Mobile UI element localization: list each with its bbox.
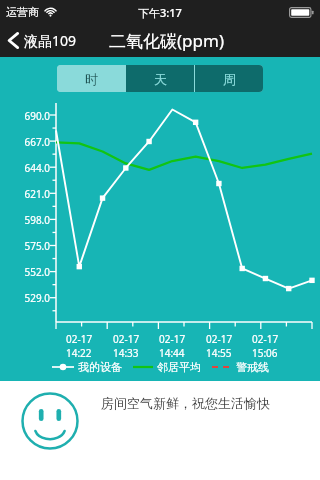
staticText: 667.0 — [6, 135, 50, 149]
staticText: 598.0 — [6, 213, 50, 227]
staticText: 575.0 — [6, 239, 50, 253]
staticText: 14:33 — [113, 346, 139, 360]
other: Back — [8, 32, 19, 49]
staticText: 液晶109 — [24, 31, 77, 50]
staticText: 邻居平均 — [157, 360, 201, 374]
staticText: 690.0 — [6, 109, 50, 123]
staticText: 14:55 — [206, 346, 232, 360]
staticText: 14:22 — [66, 346, 92, 360]
staticText: 552.0 — [6, 265, 50, 279]
staticText: 02-17 — [66, 332, 93, 346]
staticText: 02-17 — [159, 332, 186, 346]
staticText: 15:06 — [252, 346, 278, 360]
staticText: 二氧化碳(ppm) — [109, 29, 225, 52]
button[interactable]: Back — [0, 24, 87, 57]
staticText: 02-17 — [252, 332, 279, 346]
button[interactable]: 房间空气新鲜，祝您生活愉快 — [0, 381, 320, 480]
button[interactable]: 时 — [57, 65, 125, 92]
button[interactable]: 天 — [126, 65, 194, 92]
staticText: 房间空气新鲜，祝您生活愉快 — [101, 395, 270, 411]
staticText: 529.0 — [6, 291, 50, 305]
staticText: 02-17 — [113, 332, 140, 346]
staticText: 644.0 — [6, 161, 50, 175]
staticText: 下午3:17 — [138, 5, 182, 20]
staticText: 运营商 — [6, 5, 39, 19]
staticText: 14:44 — [159, 346, 185, 360]
staticText: 02-17 — [206, 332, 233, 346]
button[interactable]: 周 — [195, 65, 263, 92]
staticText: 天 — [154, 71, 167, 87]
staticText: 警戒线 — [236, 360, 269, 374]
staticText: 我的设备 — [78, 360, 122, 374]
staticText: 周 — [223, 71, 236, 87]
staticText: 时 — [85, 71, 98, 87]
staticText: 621.0 — [6, 187, 50, 201]
